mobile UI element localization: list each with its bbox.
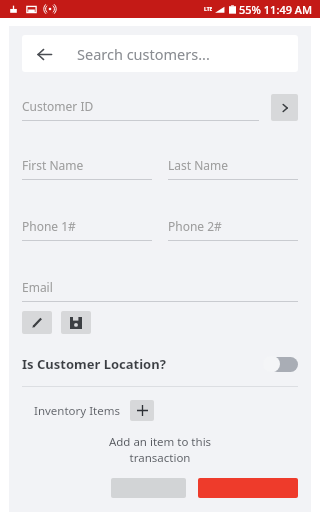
staticText: Inventory Items bbox=[34, 403, 120, 419]
button[interactable]: Phone 1# bbox=[22, 218, 152, 241]
staticText: Email bbox=[22, 279, 53, 295]
staticText: Add an item to this transaction bbox=[22, 434, 298, 465]
button[interactable]: Back bbox=[22, 35, 298, 72]
button[interactable]: Is Customer Location? bbox=[22, 355, 298, 373]
staticText: Phone 2# bbox=[168, 218, 222, 234]
staticText: Is Customer Location? bbox=[22, 355, 166, 373]
staticText: Search customers... bbox=[77, 44, 210, 64]
button[interactable]: Next bbox=[271, 94, 298, 121]
button[interactable]: Save bbox=[61, 311, 91, 334]
button[interactable]: Customer ID bbox=[22, 98, 259, 121]
staticText: Last Name bbox=[168, 157, 229, 173]
button[interactable]: Email bbox=[22, 279, 298, 302]
button[interactable]: Edit bbox=[22, 311, 52, 334]
staticText: Phone 1# bbox=[22, 218, 76, 234]
staticText: 55% 11:49 AM bbox=[239, 2, 313, 17]
staticText: Customer ID bbox=[22, 98, 94, 114]
button[interactable]: First Name bbox=[22, 157, 152, 180]
button[interactable] bbox=[198, 478, 298, 498]
staticText: First Name bbox=[22, 157, 84, 173]
button[interactable]: Back bbox=[33, 43, 55, 65]
button[interactable]: Add inventory item bbox=[130, 400, 154, 421]
button[interactable]: Phone 2# bbox=[168, 218, 298, 241]
staticText: LTE bbox=[204, 6, 213, 13]
button[interactable]: Last Name bbox=[168, 157, 298, 180]
